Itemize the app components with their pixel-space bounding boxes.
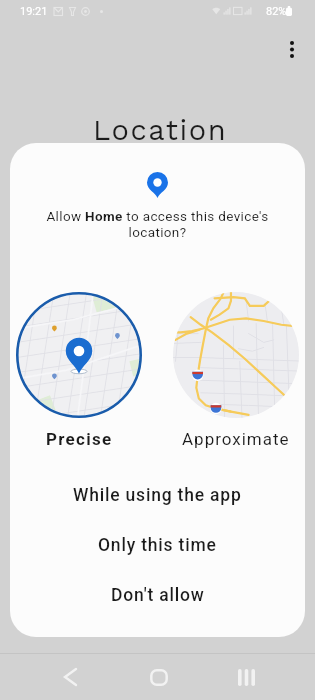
staticText: Only this time — [98, 535, 217, 556]
button[interactable]: Back — [47, 654, 94, 700]
staticText: Don't allow — [111, 585, 205, 606]
staticText: Location — [93, 113, 228, 147]
button[interactable]: Don't allow — [10, 573, 305, 617]
button[interactable]: Precise — [11, 292, 147, 449]
staticText: While using the app — [73, 485, 242, 506]
staticText: Precise — [46, 429, 113, 449]
button[interactable]: While using the app — [10, 473, 305, 517]
staticText: 82% — [266, 5, 287, 18]
staticText: Allow Home to access this device's locat… — [46, 208, 269, 240]
button[interactable]: Recent apps — [223, 654, 270, 700]
button[interactable]: Approximate — [168, 292, 304, 449]
button[interactable]: Only this time — [10, 523, 305, 567]
staticText: 19:21 — [20, 5, 48, 18]
button[interactable]: More options — [276, 33, 308, 65]
staticText: Approximate — [182, 429, 290, 449]
button[interactable]: Home — [135, 654, 182, 700]
